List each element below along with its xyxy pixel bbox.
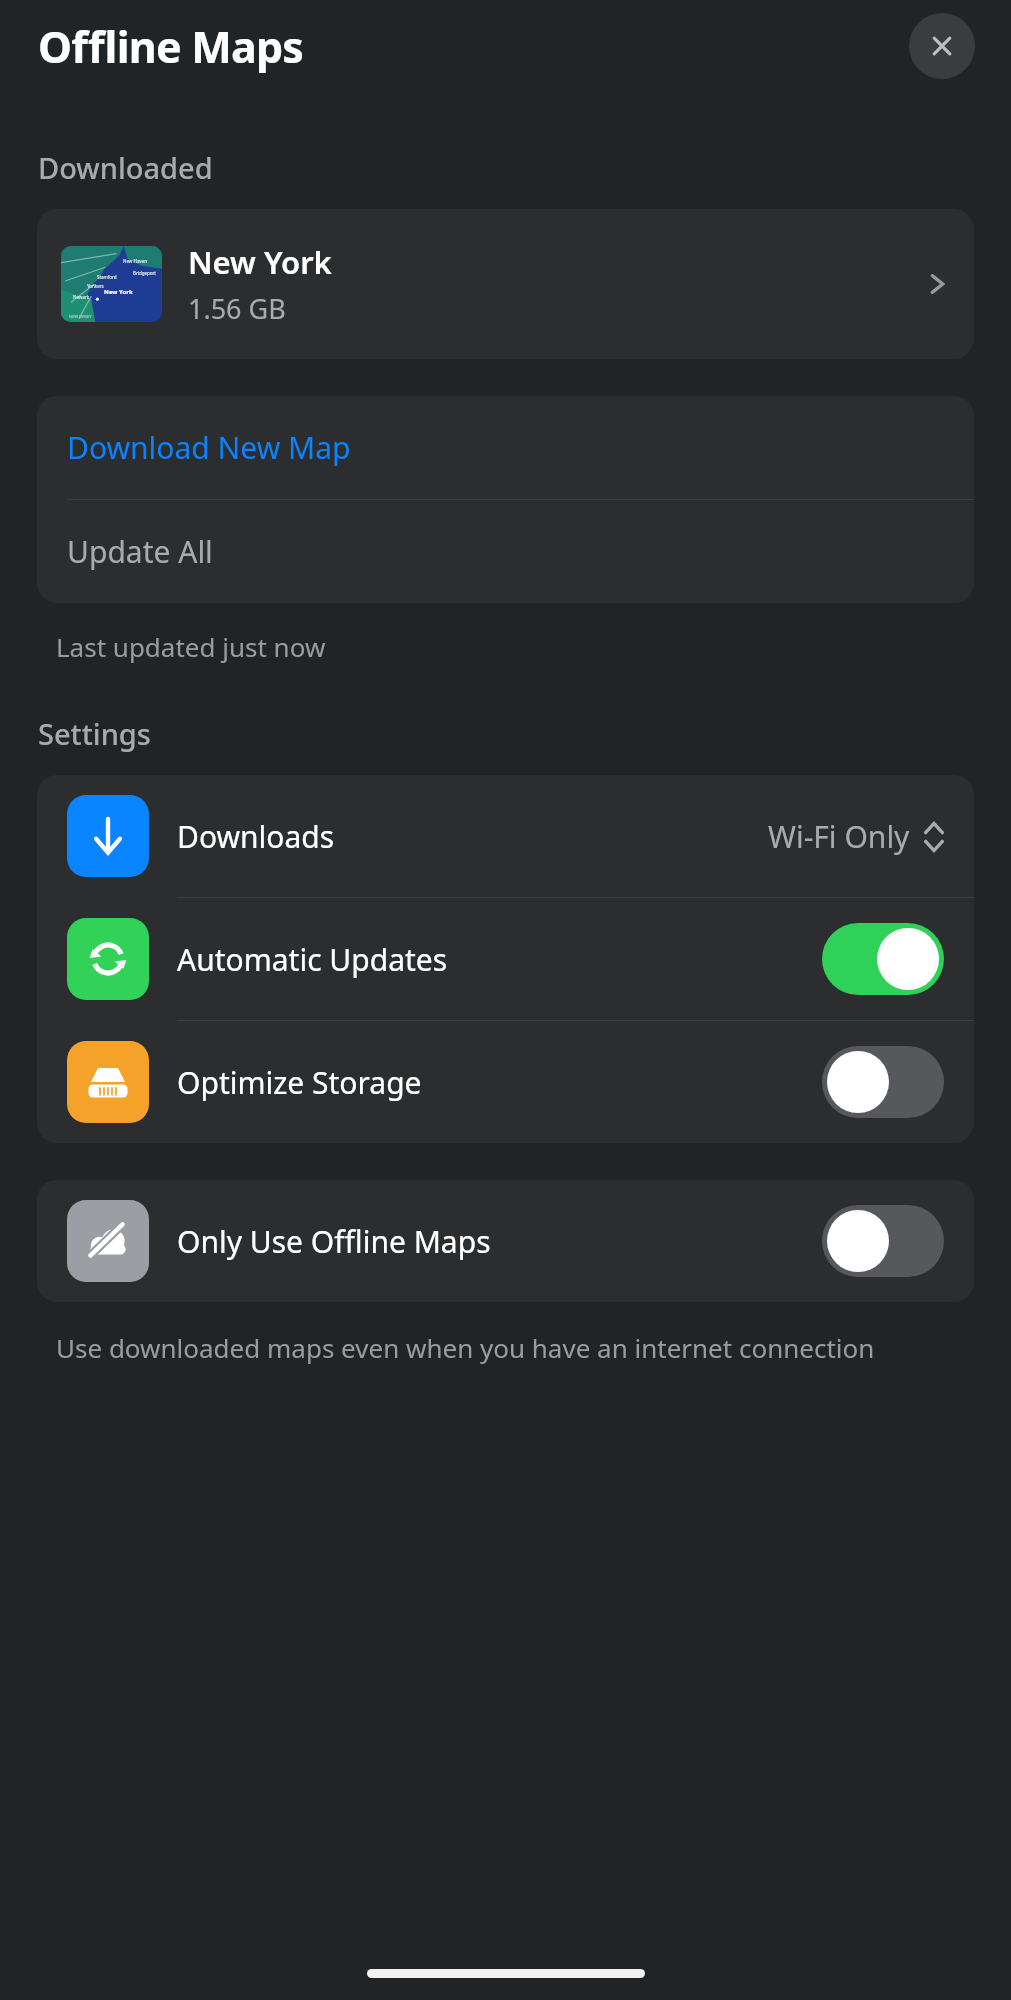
- button[interactable]: Update All: [37, 500, 974, 603]
- staticText: Bridgeport: [133, 270, 156, 276]
- staticText: Download New Map: [67, 427, 351, 468]
- staticText: Downloads: [177, 816, 768, 857]
- button[interactable]: [822, 1046, 944, 1118]
- button[interactable]: [822, 923, 944, 995]
- staticText: Wi-Fi Only: [768, 816, 910, 857]
- staticText: 1.56 GB: [188, 290, 286, 327]
- button[interactable]: Optimize Storage: [37, 1021, 974, 1143]
- staticText: Only Use Offline Maps: [177, 1221, 822, 1262]
- button[interactable]: [822, 1205, 944, 1277]
- staticText: New York: [104, 288, 133, 296]
- staticText: New York: [188, 241, 332, 283]
- staticText: NEW JERSEY: [69, 314, 92, 319]
- staticText: Use downloaded maps even when you have a…: [56, 1330, 875, 1365]
- staticText: Downloaded: [38, 148, 213, 187]
- staticText: Update All: [67, 531, 213, 572]
- staticText: Yonkers: [87, 283, 104, 289]
- staticText: Optimize Storage: [177, 1062, 822, 1103]
- staticText: Offline Maps: [38, 17, 304, 76]
- staticText: Last updated just now: [56, 629, 326, 664]
- button[interactable]: Only Use Offline Maps: [37, 1180, 974, 1302]
- button[interactable]: Close: [909, 13, 975, 79]
- staticText: Automatic Updates: [177, 939, 822, 980]
- staticText: Newark: [73, 294, 90, 300]
- staticText: Settings: [38, 714, 151, 753]
- staticText: New Haven: [123, 258, 148, 264]
- staticText: Stamford: [97, 274, 117, 280]
- button[interactable]: Automatic Updates: [37, 898, 974, 1020]
- button[interactable]: Downloads: [37, 775, 974, 897]
- button[interactable]: Download New Map: [37, 396, 974, 499]
- button[interactable]: New York: [37, 209, 974, 359]
